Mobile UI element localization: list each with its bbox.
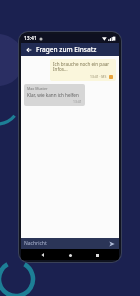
button[interactable]: Ich brauche noch ein paar Infos… bbox=[50, 59, 116, 81]
staticText: 13:41 bbox=[24, 35, 37, 42]
staticText: Nachricht bbox=[24, 240, 107, 247]
staticText: Max Muster bbox=[27, 86, 48, 91]
staticText: Ich brauche noch ein paar Infos… bbox=[53, 61, 113, 73]
staticText: Fragen zum Einsatz bbox=[36, 45, 97, 54]
button[interactable]: Back bbox=[38, 250, 48, 260]
staticText: 13:41 · MS bbox=[90, 74, 107, 79]
button[interactable]: Back bbox=[24, 45, 33, 54]
staticText: Klar, wie kann ich helfen bbox=[27, 92, 79, 98]
button[interactable]: Home bbox=[65, 250, 75, 260]
staticText: 13:41 bbox=[73, 99, 82, 104]
button[interactable]: Recents bbox=[92, 250, 102, 260]
button[interactable]: Send bbox=[107, 239, 116, 248]
button[interactable]: Max Muster bbox=[24, 84, 85, 106]
